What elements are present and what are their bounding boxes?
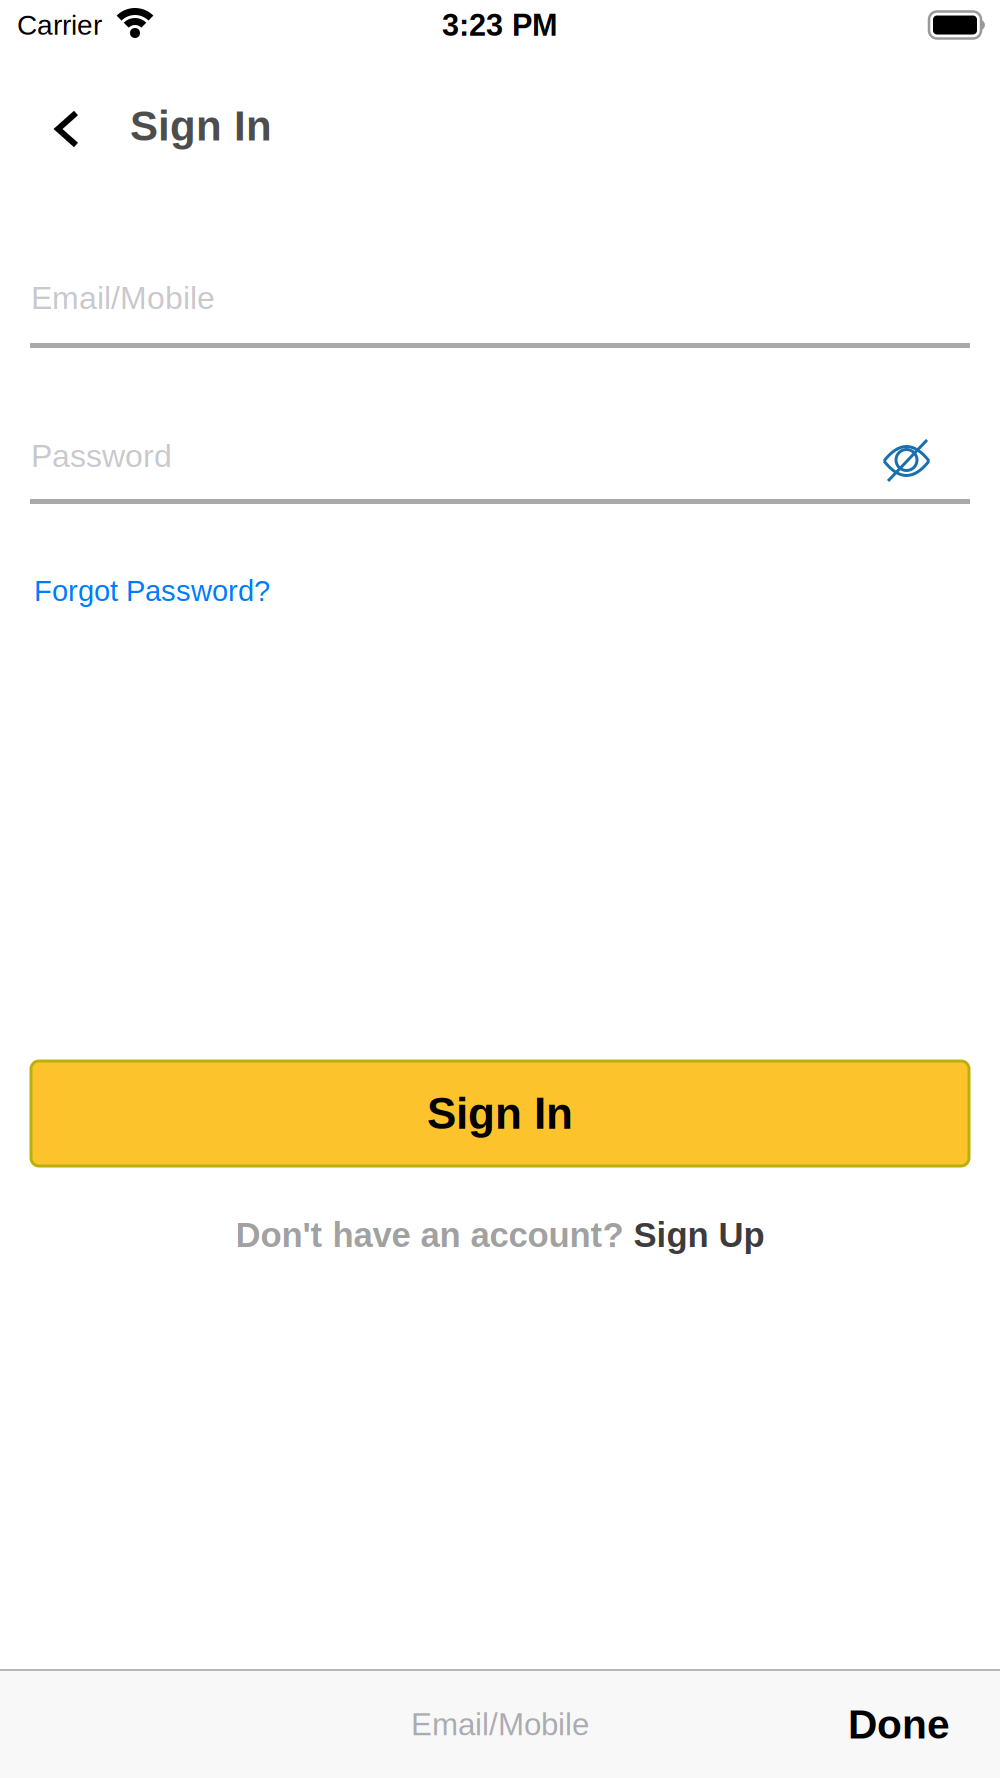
staticText: Sign In <box>130 102 272 149</box>
staticText: Email/Mobile <box>411 1707 589 1742</box>
staticText: Email/Mobile <box>31 280 215 316</box>
staticText: Don't have an account? <box>235 1216 633 1254</box>
button[interactable]: Sign Up <box>633 1216 764 1254</box>
staticText: 3:23 PM <box>442 8 558 42</box>
button[interactable]: Back <box>45 100 89 152</box>
staticText: Carrier <box>17 9 102 41</box>
button[interactable]: Show password <box>883 430 930 482</box>
staticText: Done <box>848 1702 950 1747</box>
staticText: Sign Up <box>633 1216 764 1254</box>
staticText: Password <box>31 438 172 474</box>
button[interactable]: Sign In <box>31 1061 969 1166</box>
button[interactable]: Done <box>848 1702 1000 1747</box>
button[interactable]: Forgot Password? <box>34 569 270 613</box>
staticText: Sign In <box>427 1089 573 1138</box>
staticText: Forgot Password? <box>34 575 270 607</box>
